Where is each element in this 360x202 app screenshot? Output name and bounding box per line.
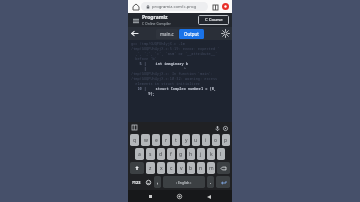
staticText: programiz.com/c-prog <box>152 4 197 10</box>
staticText: b <box>189 165 193 172</box>
staticText: ,', ';', '=', 'asm' or '__attribute__' <box>131 51 218 56</box>
staticText: C Online Compiler <box>142 21 171 26</box>
staticText: q <box>133 137 137 144</box>
button[interactable]: Back <box>203 191 214 202</box>
staticText: main.c <box>160 31 174 37</box>
button[interactable]: p <box>222 134 230 146</box>
button[interactable]: w <box>141 134 150 146</box>
staticText: d <box>159 151 163 158</box>
button[interactable]: Tabs <box>210 2 220 12</box>
button[interactable]: f <box>167 148 175 160</box>
staticText: Output <box>184 31 199 37</box>
staticText: z <box>149 165 152 172</box>
staticText: s <box>149 151 152 158</box>
button[interactable]: m <box>207 162 215 174</box>
staticText: g <box>179 151 183 158</box>
button[interactable]: main.c <box>156 29 178 39</box>
button[interactable]: Theme <box>219 27 232 40</box>
button[interactable]: C Course <box>198 15 229 25</box>
button[interactable]: Record <box>220 1 231 12</box>
staticText: before 'b' <box>131 56 157 61</box>
staticText: ‹ English › <box>176 180 192 185</box>
staticText: /tmp/GUQPUh4yjX.c:10:32: warning: excess <box>131 76 218 81</box>
staticText: h <box>189 151 193 158</box>
button[interactable]: Home <box>174 191 185 202</box>
staticText: Programiz <box>142 14 168 21</box>
staticText: C Course <box>205 17 223 23</box>
button[interactable]: a <box>135 148 144 160</box>
button[interactable]: u <box>192 134 200 146</box>
button[interactable]: Back <box>128 27 141 40</box>
button[interactable]: i <box>202 134 210 146</box>
button[interactable]: ‹ English › <box>163 176 205 188</box>
button[interactable]: ?123 <box>130 176 142 188</box>
staticText: e <box>155 137 158 144</box>
button[interactable]: e <box>152 134 160 146</box>
button[interactable]: Menu <box>130 15 141 26</box>
staticText: /tmp/GUQPUh4yjX.c: In function 'main': <box>131 71 213 76</box>
staticText: i <box>205 137 207 144</box>
staticText: c <box>170 165 173 172</box>
staticText: /tmp/GUQPUh4yjX.c:5:19: error: expected … <box>131 46 220 51</box>
button[interactable]: Backspace <box>217 162 230 174</box>
staticText: int imaginary b <box>147 61 188 66</box>
button[interactable]: r <box>162 134 170 146</box>
button[interactable]: , <box>154 176 161 188</box>
button[interactable]: Emoji <box>144 176 152 188</box>
button[interactable]: q <box>130 134 139 146</box>
staticText: w <box>144 137 148 144</box>
button[interactable]: l <box>217 148 225 160</box>
button[interactable]: Voice input <box>213 124 221 132</box>
staticText: l <box>220 151 222 158</box>
button[interactable]: Settings <box>221 124 229 132</box>
staticText: y <box>185 137 188 144</box>
staticText: | <box>131 66 147 71</box>
staticText: r <box>165 137 168 144</box>
button[interactable]: Shift <box>130 162 144 174</box>
button[interactable]: v <box>177 162 185 174</box>
button[interactable]: c <box>167 162 175 174</box>
button[interactable]: Recents <box>145 191 156 202</box>
staticText: v <box>180 165 183 172</box>
staticText: 9}; <box>131 91 155 96</box>
staticText: u <box>194 137 198 144</box>
button[interactable]: Clipboard <box>131 124 138 131</box>
button[interactable]: y <box>182 134 190 146</box>
button[interactable]: g <box>177 148 185 160</box>
staticText: p <box>224 137 228 144</box>
staticText: , <box>157 179 159 186</box>
button[interactable]: b <box>187 162 195 174</box>
staticText: a <box>138 151 141 158</box>
staticText: . <box>210 179 212 186</box>
button[interactable]: t <box>172 134 180 146</box>
staticText: 5 | <box>131 61 147 66</box>
staticText: struct Complex number1 = {8, <box>147 86 216 91</box>
staticText: 10 | <box>131 86 147 91</box>
button[interactable]: o <box>212 134 220 146</box>
staticText: elements in struct initializer <box>131 81 200 86</box>
staticText: gcc /tmp/GUQPUh4yjX.c -lm <box>131 41 185 46</box>
button[interactable]: h <box>187 148 195 160</box>
button[interactable]: x <box>157 162 165 174</box>
staticText: f <box>170 151 172 158</box>
button[interactable]: . <box>207 176 214 188</box>
staticText: o <box>214 137 218 144</box>
button[interactable]: programiz.com/c-prog <box>141 2 208 11</box>
staticText: j <box>200 151 202 158</box>
button[interactable]: j <box>197 148 205 160</box>
staticText: m <box>209 165 214 172</box>
button[interactable]: k <box>207 148 215 160</box>
button[interactable]: s <box>146 148 155 160</box>
button[interactable]: Home <box>130 1 141 12</box>
staticText: t <box>175 137 177 144</box>
staticText: ?123 <box>132 180 141 185</box>
button[interactable]: d <box>157 148 165 160</box>
button[interactable]: Output <box>179 29 204 39</box>
staticText: ^ <box>147 66 186 71</box>
staticText: k <box>210 151 213 158</box>
button[interactable]: n <box>197 162 205 174</box>
staticText: n <box>199 165 203 172</box>
staticText: x <box>160 165 163 172</box>
button[interactable]: Enter <box>216 176 230 188</box>
button[interactable]: z <box>146 162 155 174</box>
